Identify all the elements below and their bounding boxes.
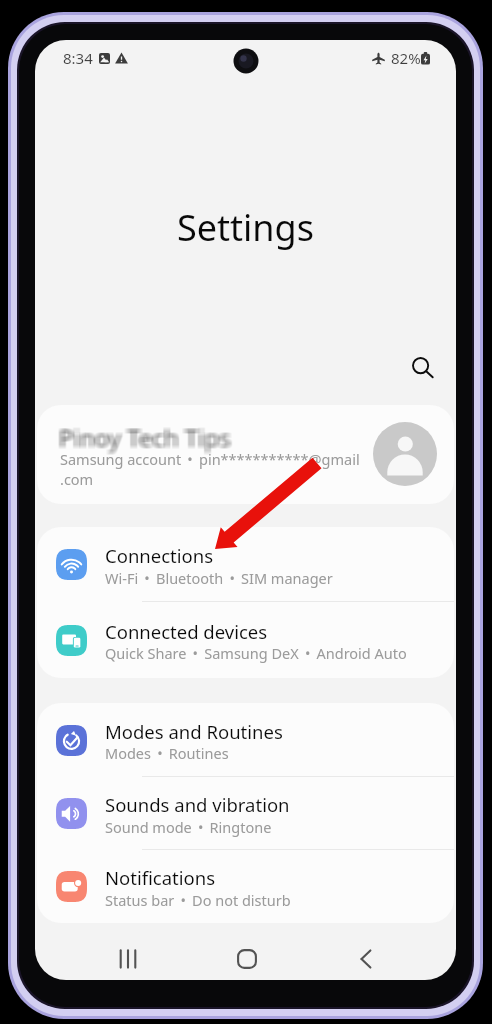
- button[interactable]: Modes and Routines: [37, 703, 454, 777]
- staticText: 82%: [391, 48, 421, 68]
- staticText: Pinoy Tech Tips: [58, 423, 230, 456]
- staticText: 8:34: [63, 48, 93, 68]
- button[interactable]: Home: [219, 931, 274, 980]
- staticText: Modes • Routines: [105, 743, 229, 763]
- staticText: Pinoy Tech Tips: [60, 421, 232, 454]
- staticText: Pinoy Tech Tips: [59, 423, 231, 456]
- staticText: Pinoy Tech Tips: [62, 422, 234, 455]
- staticText: Pinoy Tech Tips: [60, 420, 232, 453]
- staticText: Pinoy Tech Tips: [62, 420, 234, 453]
- staticText: Sounds and vibration: [105, 792, 290, 817]
- button[interactable]: Connections: [37, 527, 454, 602]
- staticText: Pinoy Tech Tips: [60, 423, 232, 456]
- staticText: Pinoy Tech Tips: [58, 420, 230, 453]
- button[interactable]: Pinoy Tech Tips: [37, 405, 454, 504]
- staticText: Settings: [177, 203, 314, 252]
- staticText: Pinoy Tech Tips: [61, 423, 233, 456]
- staticText: Pinoy Tech Tips: [62, 423, 234, 456]
- staticText: Pinoy Tech Tips: [58, 421, 230, 454]
- staticText: Pinoy Tech Tips: [57, 422, 229, 455]
- button[interactable]: Back: [338, 931, 393, 980]
- staticText: Pinoy Tech Tips: [62, 421, 234, 454]
- staticText: Pinoy Tech Tips: [57, 423, 229, 456]
- staticText: Pinoy Tech Tips: [59, 421, 231, 454]
- staticText: Pinoy Tech Tips: [59, 422, 231, 455]
- staticText: Notifications: [105, 865, 216, 890]
- staticText: Pinoy Tech Tips: [56, 423, 228, 456]
- staticText: Status bar • Do not disturb: [105, 890, 291, 910]
- staticText: Pinoy Tech Tips: [58, 422, 230, 455]
- button[interactable]: Notifications: [37, 850, 454, 923]
- staticText: Wi-Fi • Bluetooth • SIM manager: [105, 568, 333, 588]
- staticText: Sound mode • Ringtone: [105, 817, 272, 837]
- staticText: Samsung account • pin***********@gmail .…: [60, 449, 360, 489]
- staticText: Pinoy Tech Tips: [61, 420, 233, 453]
- staticText: Pinoy Tech Tips: [59, 419, 231, 452]
- staticText: Pinoy Tech Tips: [56, 422, 228, 455]
- button[interactable]: Connected devices: [37, 602, 454, 678]
- staticText: Modes and Routines: [105, 719, 283, 744]
- button[interactable]: Sounds and vibration: [37, 777, 454, 850]
- staticText: Pinoy Tech Tips: [57, 419, 229, 452]
- staticText: Pinoy Tech Tips: [61, 419, 233, 452]
- staticText: Pinoy Tech Tips: [60, 422, 232, 455]
- button[interactable]: Recents: [100, 931, 155, 980]
- staticText: Quick Share • Samsung DeX • Android Auto: [105, 643, 407, 663]
- staticText: Pinoy Tech Tips: [61, 421, 233, 454]
- staticText: Pinoy Tech Tips: [57, 420, 229, 453]
- staticText: Pinoy Tech Tips: [59, 420, 231, 453]
- staticText: Pinoy Tech Tips: [56, 419, 228, 452]
- staticText: Pinoy Tech Tips: [57, 421, 229, 454]
- staticText: Pinoy Tech Tips: [62, 419, 234, 452]
- staticText: Connected devices: [105, 619, 268, 644]
- staticText: Pinoy Tech Tips: [61, 422, 233, 455]
- staticText: Pinoy Tech Tips: [60, 419, 232, 452]
- staticText: Pinoy Tech Tips: [56, 421, 228, 454]
- staticText: Pinoy Tech Tips: [58, 419, 230, 452]
- staticText: Connections: [105, 543, 214, 568]
- staticText: Pinoy Tech Tips: [56, 420, 228, 453]
- button[interactable]: Search: [399, 344, 446, 391]
